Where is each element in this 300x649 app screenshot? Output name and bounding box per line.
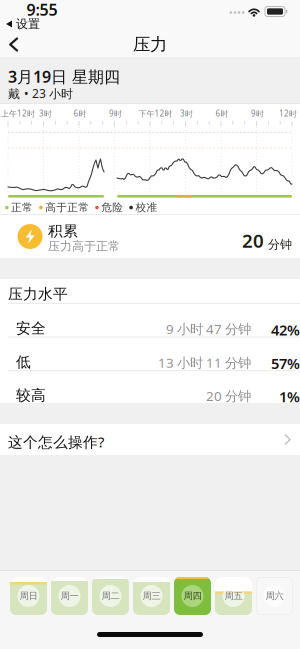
staticText: 上午12时 bbox=[1, 108, 35, 119]
staticText: 42% bbox=[271, 320, 300, 339]
staticText: 3时 bbox=[39, 108, 52, 119]
staticText: 安全 bbox=[16, 319, 46, 337]
button[interactable]: 返回设置 bbox=[1, 17, 45, 31]
staticText: 压力水平 bbox=[8, 285, 68, 303]
button[interactable]: 周三 bbox=[133, 577, 170, 615]
staticText: 3时 bbox=[180, 108, 193, 119]
staticText: 周二 bbox=[101, 590, 119, 602]
staticText: 13 小时 11 分钟 bbox=[158, 354, 251, 371]
staticText: 周四 bbox=[183, 590, 201, 602]
staticText: 正常 bbox=[11, 201, 33, 214]
button[interactable]: 周一 bbox=[51, 577, 88, 615]
staticText: 3月19日 星期四 bbox=[8, 66, 120, 87]
staticText: 9时 bbox=[109, 108, 122, 119]
button[interactable]: 这个怎么操作? bbox=[0, 424, 300, 455]
staticText: 下午12时 bbox=[138, 108, 172, 119]
button[interactable]: 周六 bbox=[256, 577, 293, 615]
staticText: 9:55 bbox=[26, 0, 57, 20]
staticText: 危险 bbox=[101, 201, 123, 214]
staticText: 高于正常 bbox=[45, 201, 89, 214]
staticText: 周一 bbox=[60, 590, 78, 602]
staticText: 压力 bbox=[133, 34, 167, 55]
button[interactable]: 周二 bbox=[92, 577, 129, 615]
staticText: 1% bbox=[279, 387, 300, 406]
button[interactable]: 返回 bbox=[9, 37, 23, 51]
staticText: 周三 bbox=[142, 590, 160, 602]
staticText: 9 小时 47 分钟 bbox=[166, 320, 251, 338]
staticText: 12时 bbox=[279, 108, 297, 119]
staticText: 压力高于正常 bbox=[48, 239, 120, 254]
staticText: 积累 bbox=[48, 222, 78, 240]
staticText: 周六 bbox=[265, 590, 283, 602]
staticText: 戴 • 23 小时 bbox=[8, 85, 73, 101]
staticText: 6时 bbox=[215, 108, 228, 119]
button[interactable]: 周四 bbox=[174, 577, 211, 615]
staticText: 低 bbox=[16, 353, 31, 371]
button[interactable]: 周日 bbox=[10, 577, 47, 615]
staticText: 20 分钟 bbox=[242, 228, 292, 253]
staticText: 较高 bbox=[16, 386, 46, 404]
button[interactable]: 周五 bbox=[215, 577, 252, 615]
staticText: 这个怎么操作? bbox=[8, 432, 104, 451]
staticText: 6时 bbox=[73, 108, 86, 119]
staticText: 校准 bbox=[135, 201, 157, 214]
staticText: 57% bbox=[271, 354, 300, 373]
staticText: 周日 bbox=[19, 590, 37, 602]
staticText: 9时 bbox=[251, 108, 264, 119]
staticText: 周五 bbox=[224, 590, 242, 602]
staticText: 20 分钟 bbox=[206, 387, 251, 405]
staticText: 设置 bbox=[16, 17, 40, 31]
